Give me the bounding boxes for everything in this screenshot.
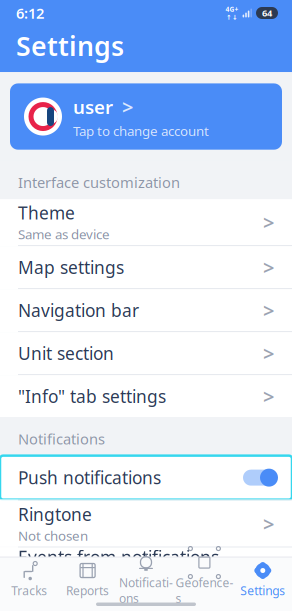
staticText: Tracks (11, 582, 47, 598)
staticText: Ringtone (18, 503, 92, 526)
staticText: Notifications (119, 575, 173, 606)
staticText: Navigation bar (18, 299, 139, 322)
staticText: "Info" tab settings (18, 385, 166, 408)
staticText: Same as device (18, 225, 110, 243)
staticText: Push notifications (18, 466, 161, 489)
button[interactable]: Ringtone (0, 501, 292, 547)
staticText: user (73, 94, 113, 119)
staticText: Not chosen (18, 527, 88, 544)
button[interactable]: Map settings (0, 246, 292, 288)
staticText: 4G+ (226, 5, 239, 14)
staticText: Theme (18, 201, 75, 224)
staticText: Interface customization (18, 173, 180, 192)
button[interactable]: Reports (58, 556, 117, 600)
staticText: Tap to change account (73, 122, 209, 140)
staticText: > (263, 340, 274, 366)
staticText: > (263, 209, 274, 235)
staticText: > (263, 254, 274, 280)
button[interactable]: user (10, 83, 282, 150)
button[interactable]: "Info" tab settings (0, 375, 292, 417)
staticText: Reports (66, 582, 109, 598)
staticText: > (263, 297, 274, 323)
staticText: Map settings (18, 256, 124, 279)
button[interactable]: Notifications (117, 549, 175, 608)
staticText: 64 (262, 7, 272, 19)
button[interactable]: Events from notifications in unit histor… (0, 548, 292, 590)
button[interactable]: Tracks (0, 556, 58, 600)
staticText: Unit section (18, 342, 114, 365)
staticText: > (122, 93, 133, 120)
staticText: ↑↓ (226, 14, 238, 21)
staticText: Settings (240, 582, 285, 598)
staticText: Settings (16, 28, 124, 63)
staticText: Notifications (18, 429, 105, 449)
staticText: Geofences (175, 575, 233, 606)
staticText: Events from notifications in unit histor… (18, 546, 219, 592)
button[interactable]: Navigation bar (0, 289, 292, 331)
button[interactable]: Settings (234, 556, 292, 600)
button[interactable]: Push notifications (0, 456, 292, 500)
button[interactable]: Geofences (175, 549, 234, 608)
staticText: 6:12 (16, 3, 44, 23)
staticText: > (263, 383, 274, 409)
staticText: > (263, 510, 274, 537)
button[interactable]: Theme (0, 199, 292, 245)
button[interactable]: Unit section (0, 332, 292, 374)
